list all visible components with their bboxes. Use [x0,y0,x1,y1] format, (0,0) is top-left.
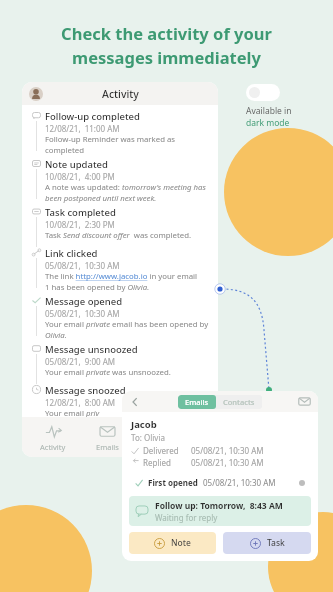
staticText: The link http://www.jacob.io in your ema… [45,271,198,293]
staticText: Follow-up Reminder was marked as complet… [45,134,210,156]
button[interactable]: Task [223,532,311,554]
staticText: 05/08/21, 9:00 AM [45,356,116,367]
staticText: Task completed [45,206,116,219]
staticText: 05/08/21, 10:30 AM [45,260,120,271]
staticText: Jacob [131,418,157,431]
button[interactable]: Follow up: Tomorrow, 8:43 AM [136,496,304,526]
staticText: Message opened [45,295,123,308]
staticText: Your email private email has been opened… [45,319,210,341]
staticText: Follow-up completed [45,110,140,123]
staticText: Emails [185,397,209,407]
button[interactable]: Dark mode toggle [246,84,280,101]
staticText: Check the activity of your messages imme… [20,22,313,69]
staticText: Your email priv [45,408,100,419]
staticText: 12/08/21, 8:00 AM [45,397,116,408]
button[interactable]: Profile [29,87,43,101]
button[interactable]: Back [128,395,142,409]
staticText: Message snoozed [45,384,126,397]
staticText: Link clicked [45,247,98,260]
staticText: Available in [246,105,292,117]
staticText: Note updated [45,158,108,171]
staticText: 05/08/21, 10:30 AM [191,445,264,456]
button[interactable]: Contacts [223,397,255,407]
staticText: 05/08/21, 10:30 AM [191,457,264,468]
staticText: 12/08/21, 11:00 AM [45,123,120,134]
staticText: Delivered [143,445,179,456]
staticText: Follow up: Tomorrow, 8:43 AM [155,500,283,512]
staticText: First opened [148,477,198,488]
staticText: 05/08/21, 10:30 AM [203,477,276,488]
staticText: 10/08/21, 4:00 PM [45,171,115,182]
staticText: Task Send discount offer was completed. [45,230,192,241]
staticText: Activity [102,87,139,101]
button[interactable]: Mail [298,395,311,408]
staticText: dark mode [246,117,290,129]
staticText: To: Olivia [131,432,165,443]
button[interactable]: Emails [185,397,209,407]
staticText: Activity [40,442,66,452]
staticText: 10/08/21, 2:30 PM [45,219,115,230]
staticText: Emails [96,442,119,452]
staticText: Replied [143,457,171,468]
staticText: 05/08/21, 10:30 AM [45,308,120,319]
staticText: Message unsnoozed [45,343,138,356]
staticText: Waiting for reply [155,512,218,523]
button[interactable]: Emails [92,421,123,454]
button[interactable]: First opened [129,473,311,492]
staticText: Note [171,537,191,549]
staticText: Task [267,537,285,549]
staticText: A note was updated: tomorrow's meeting h… [45,182,206,204]
staticText: Your email private was unsnoozed. [45,367,171,378]
button[interactable]: Activity [36,421,70,454]
button[interactable]: Note [129,532,216,554]
staticText: Contacts [223,397,255,407]
